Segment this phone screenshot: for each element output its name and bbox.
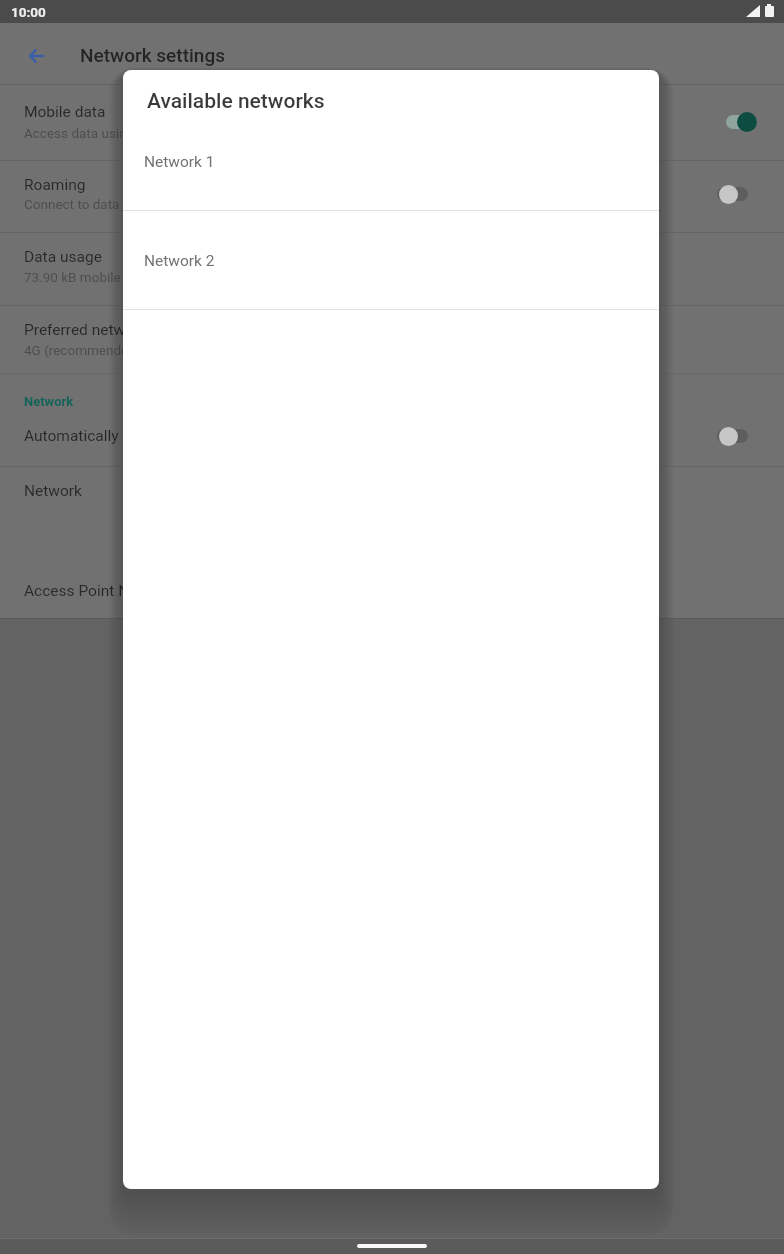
staticText: Data usage xyxy=(24,248,102,266)
button[interactable] xyxy=(0,560,784,618)
button[interactable] xyxy=(14,34,58,78)
staticText: 73.90 kB mobile data used xyxy=(24,269,184,285)
staticText: Network 1 xyxy=(144,153,215,171)
staticText: Access data using mobile networks xyxy=(24,125,237,141)
button[interactable] xyxy=(0,85,784,160)
staticText: Network xyxy=(24,482,82,500)
staticText: Automatically select network xyxy=(24,427,224,445)
staticText: Mobile data xyxy=(24,103,106,121)
staticText: Roaming xyxy=(24,176,86,194)
staticText: Connect to data services when roaming xyxy=(24,196,262,212)
staticText: Network settings xyxy=(80,44,225,66)
staticText: 4G (recommended) xyxy=(24,342,141,358)
button[interactable] xyxy=(713,421,755,451)
button[interactable] xyxy=(0,161,784,232)
button[interactable] xyxy=(0,414,784,466)
staticText: Access Point Names xyxy=(24,582,168,600)
button[interactable] xyxy=(0,467,784,542)
button[interactable] xyxy=(0,306,784,373)
button[interactable] xyxy=(713,179,755,209)
staticText: Preferred network type xyxy=(24,321,181,339)
staticText: Network xyxy=(24,394,74,409)
staticText: Network 2 xyxy=(144,252,215,270)
staticText: 10:00 xyxy=(11,4,46,20)
button[interactable] xyxy=(123,211,659,309)
button[interactable] xyxy=(123,112,659,210)
button[interactable] xyxy=(722,107,764,137)
staticText: Available networks xyxy=(147,89,325,114)
button[interactable] xyxy=(0,233,784,305)
